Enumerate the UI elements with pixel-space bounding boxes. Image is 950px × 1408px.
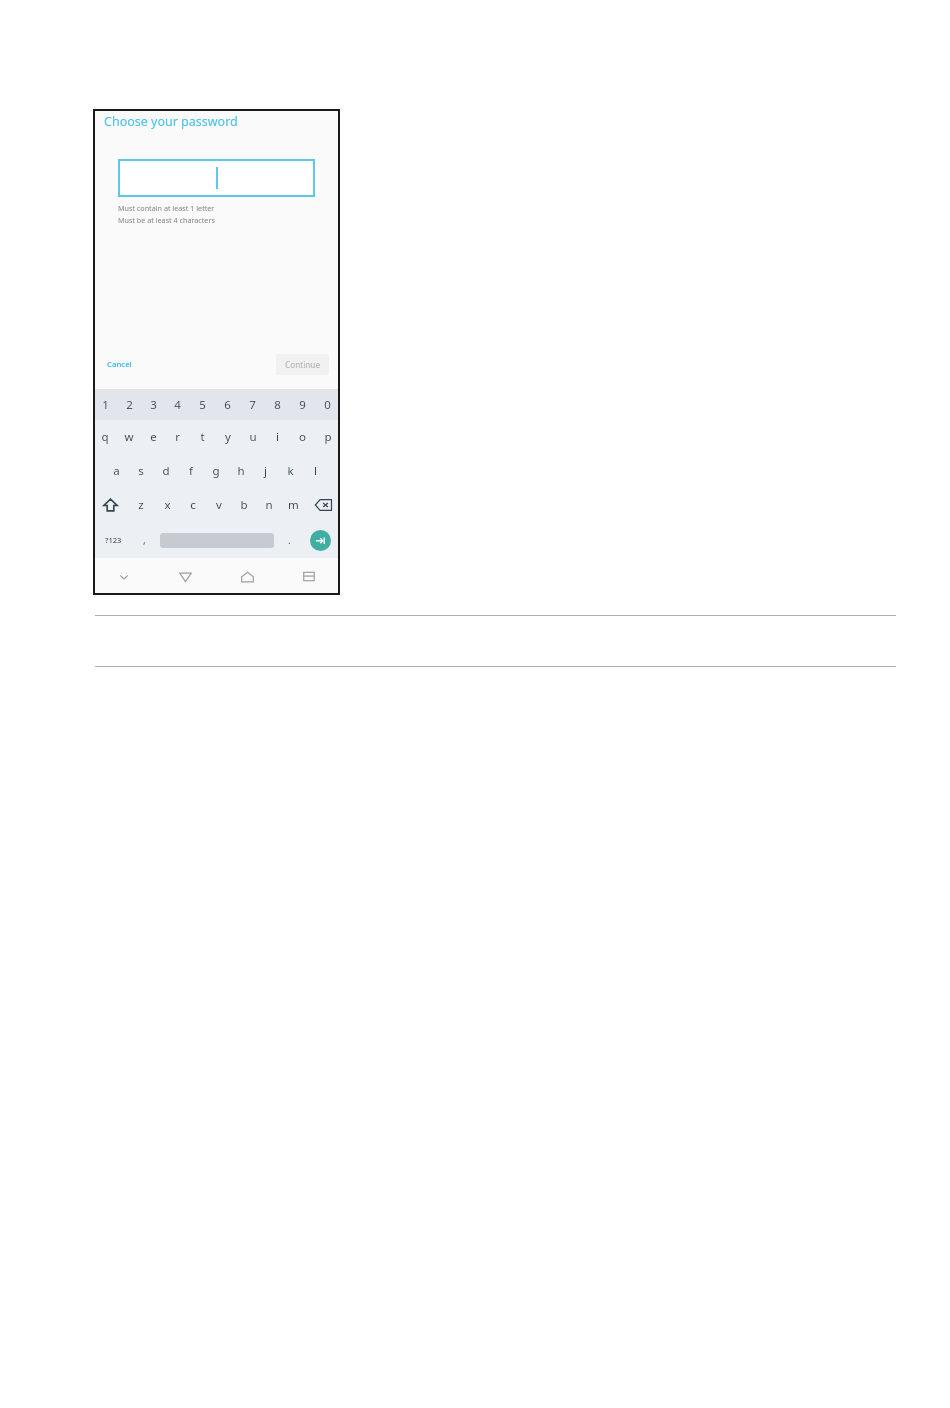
button[interactable]: Continue bbox=[276, 354, 329, 375]
button[interactable] bbox=[118, 159, 315, 197]
staticText: z bbox=[138, 497, 144, 513]
staticText: d bbox=[162, 463, 170, 479]
staticText: f bbox=[189, 463, 193, 479]
button[interactable]: l bbox=[303, 454, 328, 488]
staticText: s bbox=[138, 463, 144, 479]
staticText: n bbox=[265, 497, 273, 513]
button[interactable]: Recents bbox=[278, 558, 340, 595]
button[interactable]: p bbox=[315, 420, 340, 454]
staticText: Must contain at least 1 letter bbox=[118, 203, 215, 213]
button[interactable]: g bbox=[203, 454, 228, 488]
staticText: j bbox=[264, 463, 267, 479]
button[interactable]: Home bbox=[216, 558, 278, 595]
staticText: Must be at least 4 characters bbox=[118, 215, 215, 225]
button[interactable]: Hide keyboard bbox=[93, 558, 154, 595]
button[interactable]: 2 bbox=[117, 389, 141, 420]
staticText: t bbox=[200, 429, 205, 445]
staticText: g bbox=[212, 463, 220, 479]
button[interactable]: . bbox=[279, 522, 300, 558]
button[interactable]: q bbox=[93, 420, 117, 454]
staticText: v bbox=[216, 497, 222, 513]
button[interactable]: k bbox=[278, 454, 303, 488]
staticText: ?123 bbox=[105, 535, 122, 545]
staticText: w bbox=[124, 429, 134, 445]
button[interactable]: m bbox=[281, 488, 306, 522]
staticText: k bbox=[287, 463, 294, 479]
button[interactable]: Enter bbox=[300, 522, 340, 558]
button[interactable]: 9 bbox=[290, 389, 315, 420]
staticText: o bbox=[299, 429, 306, 445]
staticText: 1 bbox=[102, 397, 109, 413]
staticText: p bbox=[324, 429, 332, 445]
staticText: i bbox=[276, 429, 279, 445]
staticText: a bbox=[113, 463, 120, 479]
staticText: 7 bbox=[249, 397, 256, 413]
button[interactable]: 1 bbox=[93, 389, 117, 420]
staticText: y bbox=[225, 429, 231, 445]
staticText: m bbox=[288, 497, 299, 513]
staticText: q bbox=[101, 429, 109, 445]
button[interactable]: Shift bbox=[93, 488, 128, 522]
button[interactable]: x bbox=[154, 488, 180, 522]
button[interactable]: 6 bbox=[215, 389, 240, 420]
staticText: 6 bbox=[224, 397, 231, 413]
staticText: c bbox=[190, 497, 196, 513]
staticText: 3 bbox=[150, 397, 157, 413]
staticText: 5 bbox=[199, 397, 206, 413]
button[interactable]: i bbox=[265, 420, 290, 454]
button[interactable]: v bbox=[206, 488, 231, 522]
staticText: 8 bbox=[274, 397, 281, 413]
button[interactable]: r bbox=[165, 420, 190, 454]
staticText: 4 bbox=[174, 397, 181, 413]
button[interactable]: , bbox=[134, 522, 155, 558]
button[interactable]: 5 bbox=[190, 389, 215, 420]
button[interactable]: s bbox=[128, 454, 153, 488]
button[interactable]: Back bbox=[154, 558, 216, 595]
staticText: l bbox=[314, 463, 317, 479]
staticText: Cancel bbox=[107, 359, 132, 370]
staticText: r bbox=[175, 429, 180, 445]
button[interactable]: b bbox=[231, 488, 256, 522]
button[interactable]: d bbox=[153, 454, 178, 488]
button[interactable]: n bbox=[256, 488, 281, 522]
button[interactable]: w bbox=[117, 420, 141, 454]
button[interactable]: a bbox=[104, 454, 128, 488]
staticText: u bbox=[249, 429, 257, 445]
button[interactable]: 8 bbox=[265, 389, 290, 420]
staticText: x bbox=[164, 497, 171, 513]
button[interactable]: u bbox=[240, 420, 265, 454]
staticText: 9 bbox=[299, 397, 306, 413]
button[interactable]: t bbox=[190, 420, 215, 454]
staticText: Choose your password bbox=[104, 113, 238, 130]
button[interactable]: o bbox=[290, 420, 315, 454]
staticText: , bbox=[143, 533, 146, 547]
staticText: Continue bbox=[285, 359, 320, 370]
staticText: h bbox=[237, 463, 245, 479]
staticText: 2 bbox=[126, 397, 133, 413]
staticText: . bbox=[288, 533, 291, 547]
button[interactable]: Space bbox=[155, 522, 279, 558]
button[interactable]: h bbox=[228, 454, 253, 488]
staticText: b bbox=[240, 497, 248, 513]
button[interactable]: ?123 bbox=[93, 522, 134, 558]
button[interactable]: Cancel bbox=[104, 355, 135, 374]
button[interactable]: 0 bbox=[315, 389, 340, 420]
button[interactable]: j bbox=[253, 454, 278, 488]
button[interactable]: 7 bbox=[240, 389, 265, 420]
staticText: e bbox=[150, 429, 157, 445]
button[interactable]: f bbox=[178, 454, 203, 488]
button[interactable]: c bbox=[180, 488, 206, 522]
button[interactable]: y bbox=[215, 420, 240, 454]
button[interactable]: z bbox=[128, 488, 154, 522]
staticText: 0 bbox=[324, 397, 331, 413]
button[interactable]: 4 bbox=[165, 389, 190, 420]
button[interactable]: e bbox=[141, 420, 165, 454]
button[interactable]: Backspace bbox=[306, 488, 340, 522]
button[interactable]: 3 bbox=[141, 389, 165, 420]
